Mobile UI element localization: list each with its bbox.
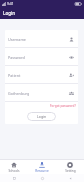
other: Back — [69, 177, 72, 180]
button[interactable]: Schools — [0, 161, 28, 173]
other: Home — [41, 177, 44, 180]
staticText: 9:41 — [7, 1, 14, 6]
staticText: Schools — [8, 169, 20, 173]
staticText: Gothenburg — [8, 91, 30, 96]
other: Setting — [67, 162, 73, 168]
other: Schools — [11, 162, 17, 168]
button[interactable]: Patient — [5, 66, 78, 84]
staticText: Username — [8, 37, 26, 42]
staticText: Password — [8, 55, 25, 60]
button[interactable]: Password — [5, 48, 78, 66]
button[interactable]: Resource — [28, 161, 56, 173]
staticText: Login — [37, 114, 47, 119]
staticText: Resource — [35, 169, 49, 173]
button[interactable]: Login — [27, 112, 56, 121]
other: User — [69, 37, 74, 42]
staticText: Login — [3, 10, 16, 16]
other: Recent apps — [13, 177, 16, 180]
button[interactable]: Gothenburg — [5, 84, 78, 102]
other: Group — [69, 91, 74, 96]
staticText: Setting — [65, 169, 76, 173]
button[interactable]: Setting — [56, 161, 84, 173]
other: Resource — [39, 162, 45, 168]
button[interactable]: Username — [5, 30, 78, 48]
staticText: Patient — [8, 73, 21, 78]
other: Show password — [69, 55, 74, 60]
other: Add person — [69, 73, 74, 78]
button[interactable]: Forgot password? — [49, 102, 77, 110]
